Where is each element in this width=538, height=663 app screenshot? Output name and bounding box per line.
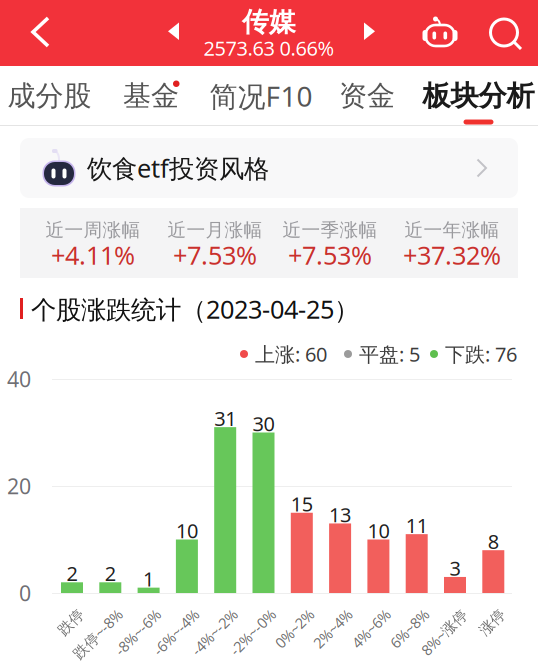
button[interactable]: Search <box>481 9 527 55</box>
staticText: 下跌: 76 <box>445 341 517 367</box>
button[interactable]: 资金 <box>313 66 421 125</box>
staticText: 0 <box>19 579 31 607</box>
staticText: 板块分析 <box>422 79 534 113</box>
staticText: 2 <box>66 560 77 587</box>
staticText: 上涨: 60 <box>255 341 327 367</box>
staticText: 近一月涨幅 <box>167 218 262 241</box>
staticText: 饮食etf投资风格 <box>87 151 269 185</box>
staticText: 0%~2% <box>258 604 306 624</box>
button[interactable]: 饮食etf投资风格 <box>20 138 518 198</box>
button[interactable]: 板块分析 <box>424 66 532 125</box>
staticText: 跌停 <box>46 605 76 623</box>
staticText: +7.53% <box>173 238 257 272</box>
staticText: 跌停~-8% <box>51 604 114 624</box>
staticText: -8%~-6% <box>95 604 153 624</box>
button[interactable]: Back <box>18 9 66 57</box>
staticText: 30 <box>252 410 274 437</box>
staticText: 8%~涨停 <box>401 604 459 624</box>
staticText: 10 <box>367 517 389 544</box>
staticText: 15 <box>291 490 313 517</box>
button[interactable]: AI assistant <box>418 9 462 53</box>
staticText: 31 <box>214 405 236 431</box>
staticText: -4%~-2% <box>171 604 229 624</box>
staticText: 近一年涨幅 <box>404 218 499 241</box>
staticText: 个股涨跌统计（2023-04-25） <box>31 292 359 326</box>
staticText: 简况F10 <box>209 77 312 115</box>
staticText: 13 <box>329 501 351 528</box>
staticText: +4.11% <box>51 238 135 272</box>
staticText: +7.53% <box>288 238 372 272</box>
staticText: 传媒 <box>242 6 296 38</box>
staticText: 3 <box>449 555 460 581</box>
button[interactable]: Next <box>349 13 389 53</box>
staticText: 近一周涨幅 <box>45 218 140 241</box>
staticText: 8 <box>488 528 499 554</box>
staticText: 成分股 <box>7 79 91 113</box>
staticText: -6%~-4% <box>133 604 191 624</box>
staticText: 2573.63 0.66% <box>203 35 334 61</box>
button[interactable]: 成分股 <box>0 66 103 125</box>
staticText: 1 <box>143 565 154 592</box>
staticText: 11 <box>406 512 428 538</box>
staticText: 4%~6% <box>334 604 382 624</box>
staticText: 基金 <box>123 79 179 113</box>
staticText: 40 <box>7 365 31 393</box>
staticText: -2%~-0% <box>209 604 267 624</box>
staticText: 2%~4% <box>296 604 344 624</box>
staticText: 2 <box>105 560 116 587</box>
button[interactable]: 简况F10 <box>207 66 315 125</box>
staticText: +37.32% <box>403 238 501 272</box>
button[interactable]: Previous <box>154 13 194 53</box>
staticText: 近一季涨幅 <box>282 218 377 241</box>
staticText: 20 <box>7 472 31 500</box>
staticText: 资金 <box>339 79 395 113</box>
staticText: 10 <box>176 517 198 544</box>
staticText: 6%~8% <box>373 604 421 624</box>
staticText: 涨停 <box>467 605 497 623</box>
staticText: 平盘: 5 <box>359 341 420 367</box>
button[interactable]: 基金 <box>97 66 205 125</box>
